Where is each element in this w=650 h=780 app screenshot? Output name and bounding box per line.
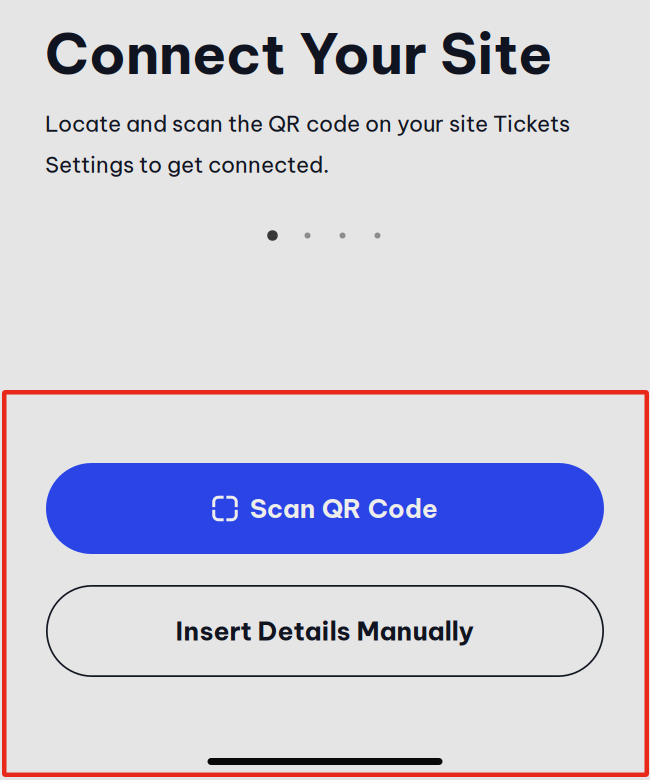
- staticText: Scan QR Code: [250, 492, 438, 525]
- staticText: Settings to get connected.: [45, 151, 329, 178]
- staticText: Connect Your Site: [45, 18, 553, 89]
- staticText: Locate and scan the QR code on your site…: [45, 110, 570, 138]
- button[interactable]: Scan QR Code: [46, 463, 604, 554]
- staticText: Insert Details Manually: [175, 615, 474, 647]
- button[interactable]: Insert Details Manually: [46, 585, 604, 677]
